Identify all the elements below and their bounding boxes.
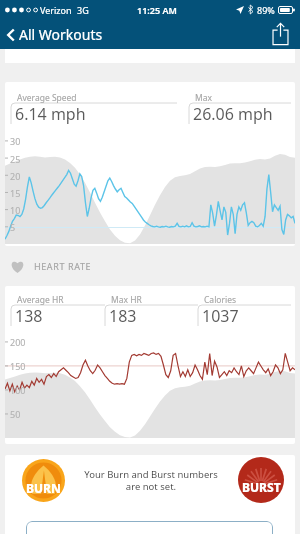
staticText: BURN — [26, 480, 61, 496]
staticText: Calories — [204, 294, 237, 306]
staticText: 1037 — [202, 305, 239, 327]
staticText: All Workouts — [19, 25, 103, 44]
button[interactable]: Share — [266, 20, 294, 48]
staticText: 26.06 mph — [193, 103, 273, 125]
staticText: Average Speed — [17, 92, 77, 104]
staticText: 10 — [10, 204, 21, 216]
button[interactable]: All Workouts — [4, 21, 106, 48]
staticText: BURST — [242, 479, 281, 495]
staticText: Average HR — [17, 294, 64, 306]
staticText: Max — [195, 92, 212, 104]
staticText: Verizon — [40, 4, 72, 16]
staticText: 183 — [109, 305, 137, 327]
staticText: 200 — [10, 336, 26, 348]
staticText: 11:25 AM — [137, 4, 177, 16]
staticText: Your Burn and Burst numbers are not set. — [84, 468, 218, 493]
staticText: 89% — [257, 4, 275, 16]
staticText: 15 — [10, 187, 21, 199]
staticText: Max HR — [111, 294, 142, 306]
button[interactable]: BURN — [22, 455, 284, 505]
staticText: 3G — [77, 4, 89, 16]
staticText: 5 — [10, 221, 16, 233]
staticText: 30 — [10, 135, 21, 147]
staticText: 25 — [10, 153, 21, 165]
staticText: 100 — [10, 384, 26, 396]
staticText: 6.14 mph — [15, 103, 86, 125]
staticText: 20 — [10, 170, 21, 182]
button[interactable]: Set Now — [26, 521, 273, 534]
staticText: 150 — [10, 360, 26, 372]
staticText: HEART RATE — [34, 260, 92, 272]
staticText: 138 — [15, 305, 43, 327]
staticText: 50 — [10, 408, 21, 420]
